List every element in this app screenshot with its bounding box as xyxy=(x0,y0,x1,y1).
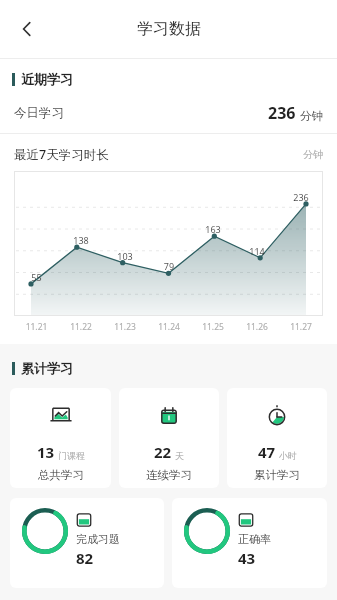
staticText: 11.21 xyxy=(14,321,59,333)
staticText: 11.26 xyxy=(235,321,279,333)
staticText: 236 xyxy=(268,102,296,124)
staticText: 163 xyxy=(191,223,235,235)
button[interactable]: Back xyxy=(6,8,48,50)
staticText: 学习数据 xyxy=(137,19,201,39)
staticText: 13 xyxy=(37,442,55,462)
button[interactable]: 完成习题 xyxy=(10,498,164,588)
button[interactable]: 47 xyxy=(227,388,327,488)
staticText: 连续学习 xyxy=(146,468,192,482)
staticText: 正确率 xyxy=(238,532,271,546)
staticText: 11.22 xyxy=(59,321,103,333)
staticText: 79 xyxy=(147,260,191,272)
staticText: 114 xyxy=(235,245,279,257)
staticText: 138 xyxy=(59,234,103,246)
staticText: 11.25 xyxy=(191,321,235,333)
button[interactable]: 13 xyxy=(10,388,111,488)
staticText: 累计学习 xyxy=(21,360,73,376)
button[interactable]: 正确率 xyxy=(172,498,327,588)
staticText: 总共学习 xyxy=(38,468,84,482)
staticText: 43 xyxy=(238,548,256,568)
staticText: 近期学习 xyxy=(21,71,73,87)
button[interactable]: 今日学习 xyxy=(0,93,337,133)
staticText: 236 xyxy=(279,191,323,203)
staticText: 天 xyxy=(175,450,184,461)
staticText: 分钟 xyxy=(300,109,323,123)
staticText: 完成习题 xyxy=(76,532,120,546)
staticText: 11.27 xyxy=(279,321,323,333)
staticText: 11.23 xyxy=(103,321,147,333)
button[interactable]: 22 xyxy=(119,388,219,488)
staticText: 分钟 xyxy=(303,148,323,161)
staticText: 22 xyxy=(154,442,172,462)
staticText: 11.24 xyxy=(147,321,191,333)
staticText: 55 xyxy=(14,271,59,283)
staticText: 小时 xyxy=(279,450,297,461)
staticText: 累计学习 xyxy=(254,468,300,482)
staticText: 今日学习 xyxy=(14,105,64,121)
staticText: 103 xyxy=(103,250,147,262)
staticText: 47 xyxy=(258,442,276,462)
staticText: 最近7天学习时长 xyxy=(14,146,109,163)
staticText: 门课程 xyxy=(58,450,85,461)
staticText: 82 xyxy=(76,548,94,568)
